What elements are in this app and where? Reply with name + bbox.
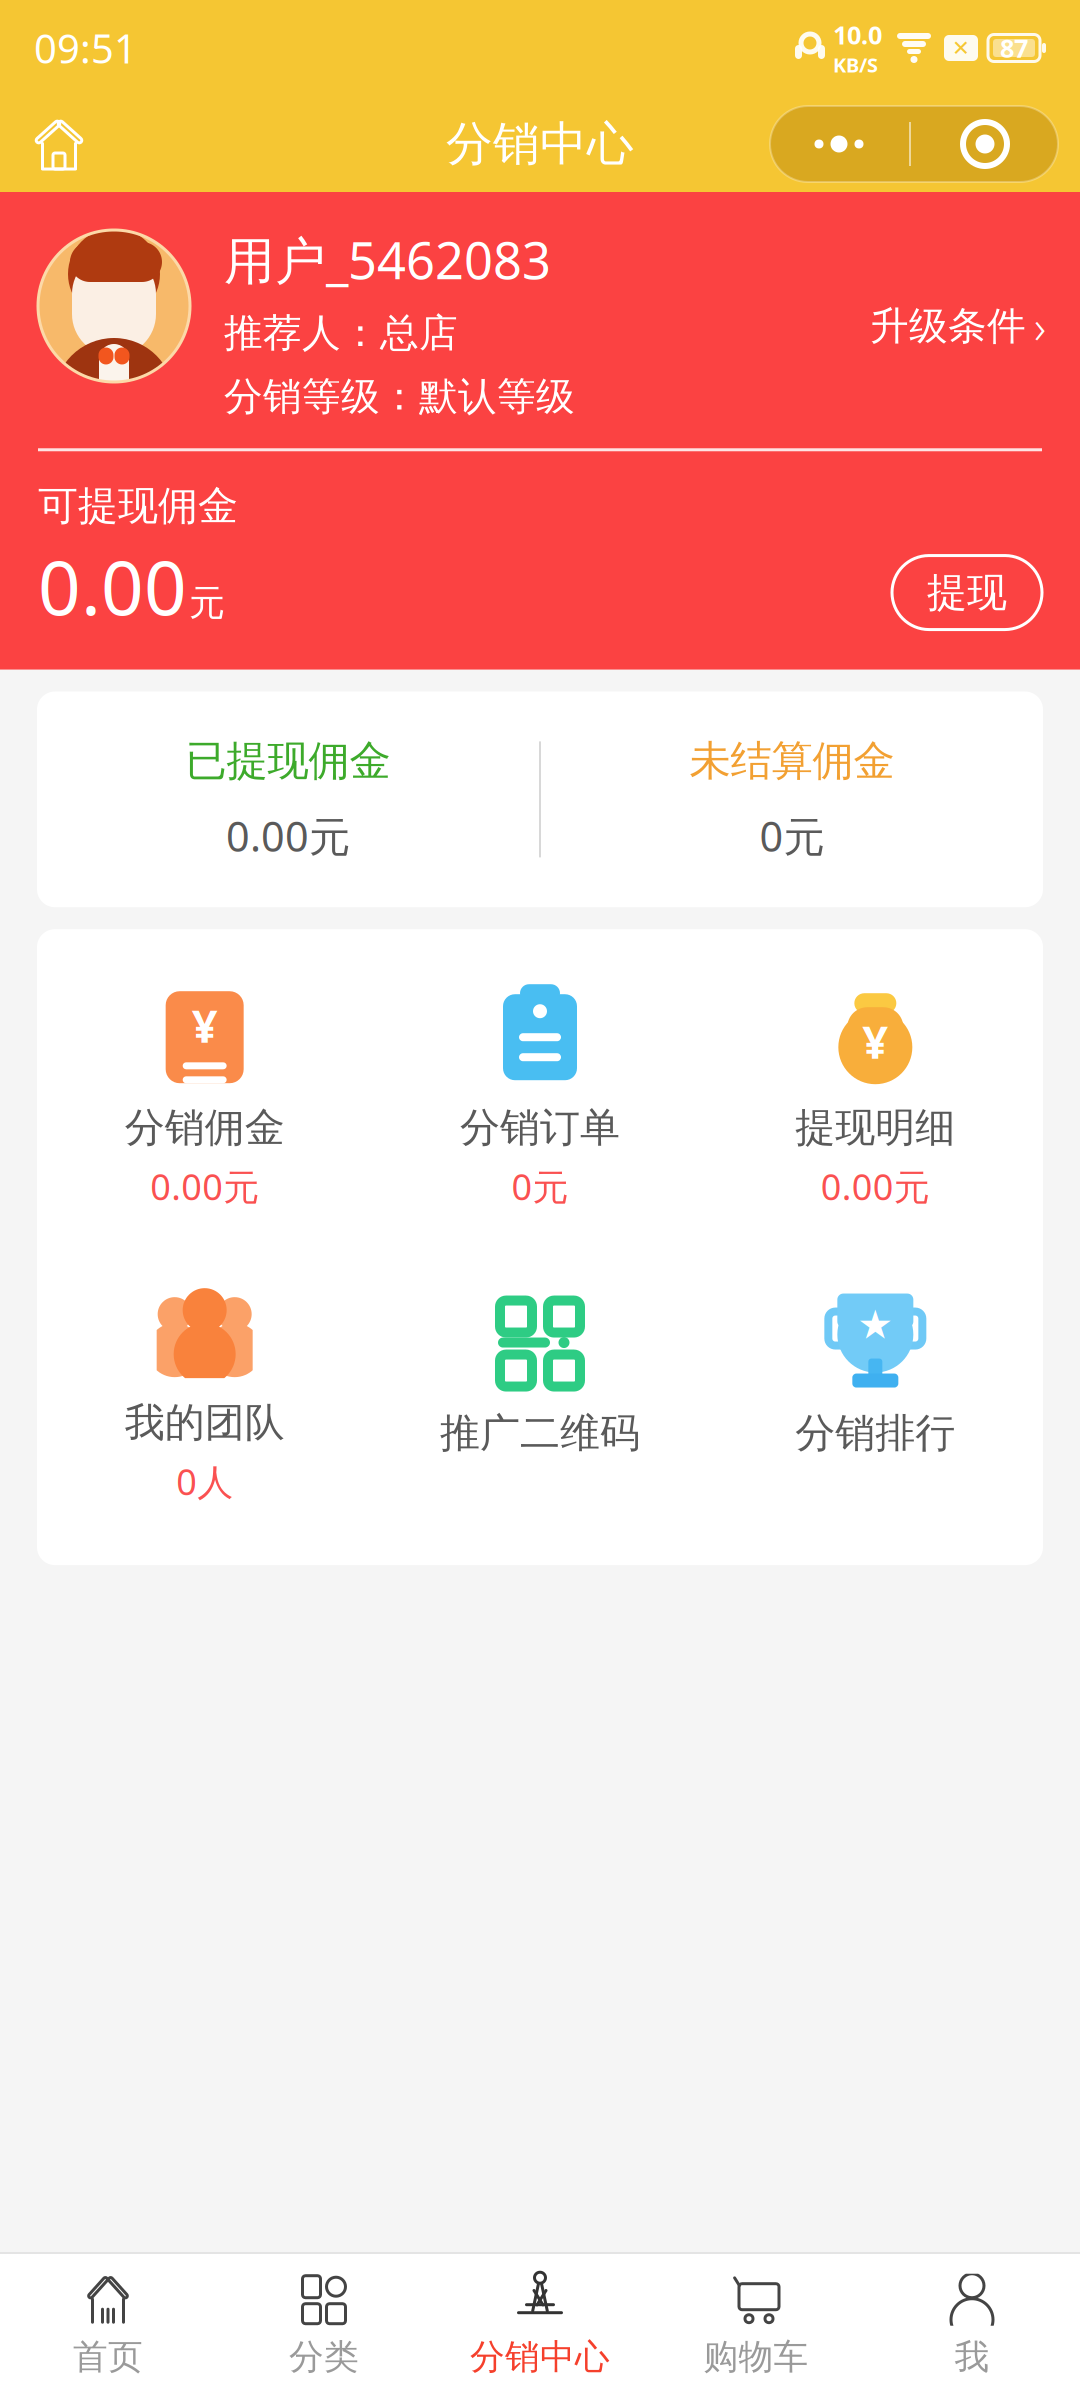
staticText: 用户_5462083 <box>224 226 551 293</box>
staticText: 推荐人：总店 <box>224 309 458 357</box>
staticText: 可提现佣金 <box>38 481 238 530</box>
staticText: 未结算佣金 <box>689 736 894 786</box>
button[interactable]: ¥ <box>708 981 1043 1218</box>
button[interactable]: 已提现佣金 <box>37 692 539 907</box>
staticText: 分销排行 <box>795 1409 955 1458</box>
staticText: 87 <box>1000 31 1028 65</box>
staticText: 升级条件 <box>870 302 1026 350</box>
button[interactable]: ¥ <box>37 981 372 1218</box>
staticText: 0人 <box>176 1457 233 1505</box>
button[interactable]: 推广二维码 <box>372 1287 708 1503</box>
staticText: 0.00 <box>38 536 187 636</box>
staticText: 我 <box>954 2336 989 2378</box>
staticText: 提现明细 <box>795 1103 955 1152</box>
staticText: 首页 <box>73 2336 143 2378</box>
button[interactable]: 分销中心 <box>432 2260 648 2392</box>
staticText: 0元 <box>511 1162 568 1210</box>
staticText: KB/S <box>833 51 878 78</box>
staticText: 分类 <box>289 2336 359 2378</box>
button[interactable]: 我的团队 <box>37 1276 372 1513</box>
button[interactable]: Home <box>20 104 98 184</box>
button[interactable]: More <box>769 106 909 182</box>
staticText: 分销等级：默认等级 <box>224 373 575 420</box>
button[interactable]: 首页 <box>0 2260 216 2392</box>
staticText: 购物车 <box>703 2336 808 2378</box>
staticText: 推广二维码 <box>440 1409 640 1458</box>
staticText: 分销中心 <box>470 2336 610 2378</box>
button[interactable]: ★ <box>708 1287 1043 1503</box>
staticText: ¥ <box>862 1011 888 1071</box>
staticText: 0.00元 <box>150 1162 259 1210</box>
button[interactable]: 分类 <box>216 2260 432 2392</box>
staticText: 已提现佣金 <box>185 736 390 786</box>
button[interactable]: 提现 <box>892 556 1042 630</box>
staticText: ¥ <box>192 995 218 1055</box>
staticText: 10.0 <box>833 18 882 51</box>
staticText: 分销中心 <box>446 115 634 173</box>
button[interactable]: 未结算佣金 <box>541 692 1043 907</box>
button[interactable]: Close mini program <box>911 106 1059 182</box>
button[interactable]: 分销订单 <box>372 981 708 1218</box>
button[interactable]: 购物车 <box>648 2260 864 2392</box>
button[interactable]: 升级条件 <box>866 284 1050 368</box>
staticText: 元 <box>189 581 225 625</box>
staticText: 0.00元 <box>821 1162 930 1210</box>
staticText: 分销佣金 <box>125 1103 285 1152</box>
staticText: 0.00元 <box>226 808 350 863</box>
staticText: 0元 <box>759 808 824 863</box>
staticText: 分销订单 <box>460 1103 620 1152</box>
staticText: ★ <box>857 1302 893 1347</box>
staticText: 09:51 <box>34 21 137 74</box>
staticText: › <box>1034 296 1046 356</box>
staticText: 提现 <box>927 568 1007 617</box>
button[interactable]: 我 <box>864 2260 1080 2392</box>
staticText: ✕ <box>952 36 970 60</box>
staticText: 我的团队 <box>125 1398 285 1447</box>
